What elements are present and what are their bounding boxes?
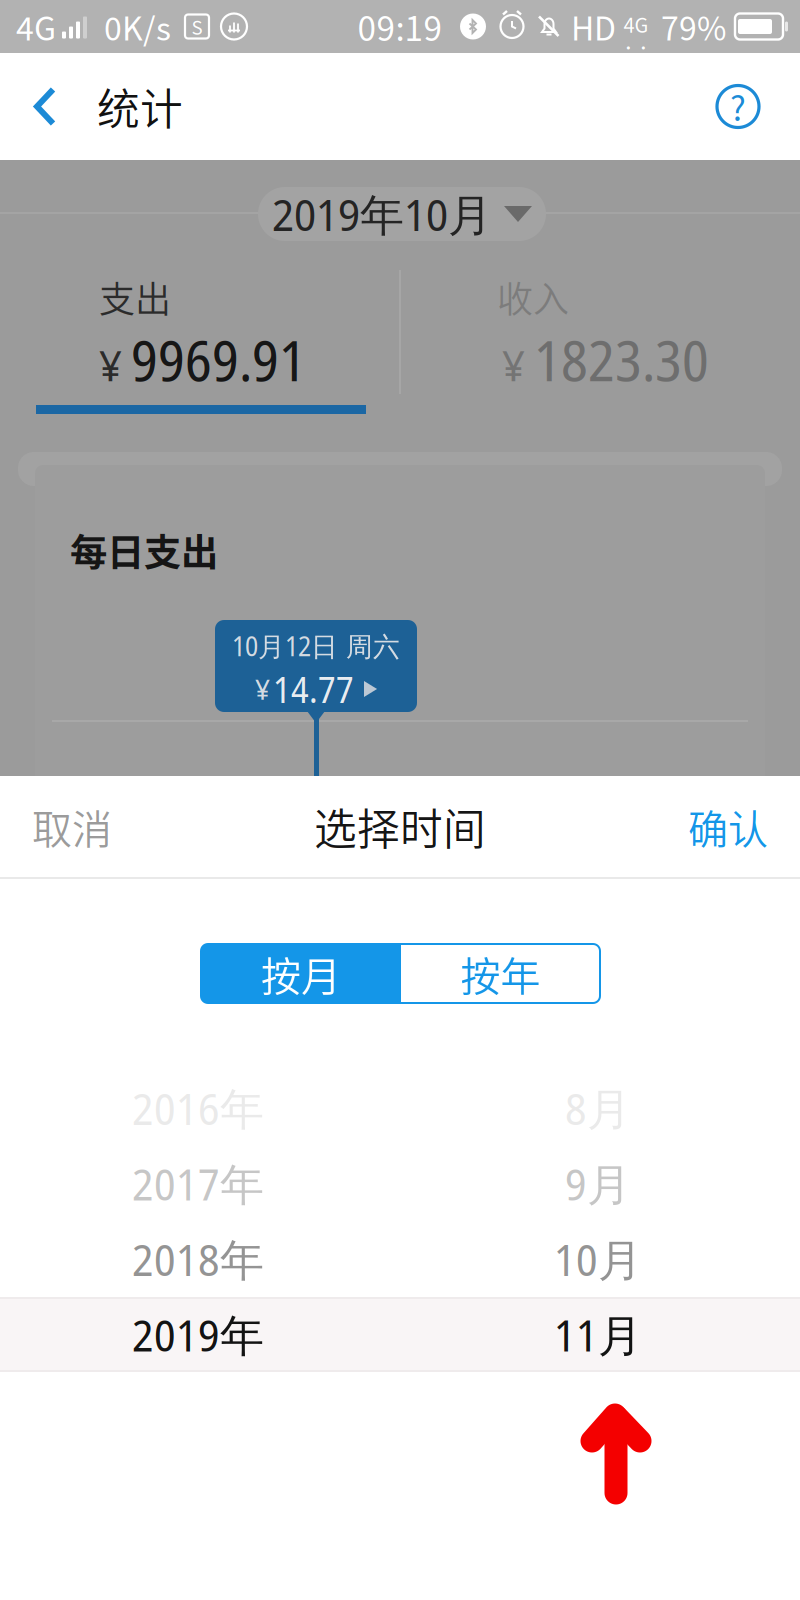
staticText: HD xyxy=(571,3,616,50)
staticText: 0K/s xyxy=(104,3,171,50)
staticText: 79% xyxy=(661,3,726,50)
button[interactable]: 按年 xyxy=(401,944,600,1003)
staticText: 09:19 xyxy=(357,2,442,51)
button[interactable]: 按月 xyxy=(201,944,401,1003)
staticText: 取消 xyxy=(32,797,112,855)
button[interactable]: 取消 xyxy=(0,776,182,877)
staticText: 2019年10月 xyxy=(272,184,492,244)
staticText: 2019年 xyxy=(132,1304,264,1364)
button[interactable]: 确认 xyxy=(638,776,768,877)
staticText: 2018年 xyxy=(132,1229,264,1289)
staticText: 9月 xyxy=(565,1153,631,1213)
staticText: 1823.30 xyxy=(534,320,709,398)
staticText: ¥ xyxy=(99,336,122,394)
staticText: 4G xyxy=(623,9,648,38)
staticText: 选择时间 xyxy=(314,796,486,857)
staticText: ? xyxy=(730,82,746,131)
staticText: 4G xyxy=(16,3,56,50)
staticText: 按月 xyxy=(261,944,341,1002)
staticText: ¥ xyxy=(502,336,525,394)
staticText: 统计 xyxy=(97,76,183,137)
staticText: 2017年 xyxy=(132,1153,264,1213)
staticText: 按年 xyxy=(460,944,540,1002)
button[interactable]: Back xyxy=(0,53,74,160)
staticText: ·· xyxy=(621,36,651,58)
staticText: S xyxy=(191,13,202,40)
staticText: 10月 xyxy=(554,1229,642,1289)
staticText: 确认 xyxy=(688,797,768,855)
staticText: 每日支出 xyxy=(70,523,218,577)
staticText: 10月12日 周六 xyxy=(232,628,400,664)
staticText: 11月 xyxy=(554,1304,642,1364)
staticText: 2016年 xyxy=(132,1078,264,1138)
staticText: 14.77 xyxy=(273,664,354,713)
staticText: 支出 xyxy=(99,271,171,323)
staticText: 收入 xyxy=(497,271,569,323)
button[interactable]: Help xyxy=(698,53,778,160)
staticText: ¥ xyxy=(255,670,270,708)
staticText: 8月 xyxy=(565,1078,631,1138)
staticText: 9969.91 xyxy=(131,320,306,398)
